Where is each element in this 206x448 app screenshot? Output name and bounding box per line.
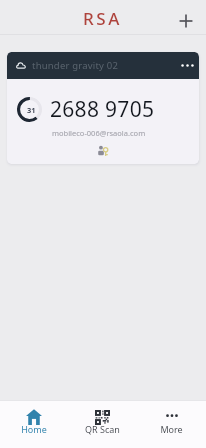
staticText: More [160,423,183,435]
staticText: thunder gravity 02 [32,59,119,72]
button[interactable]: More [137,401,206,448]
staticText: 31 [27,105,36,115]
button[interactable]: More options [178,57,196,75]
staticText: RSA [83,7,123,30]
staticText: mobileco-006@rsaola.com [52,128,146,138]
button[interactable]: thunder gravity 02 [7,52,199,164]
button[interactable]: Home [0,401,68,448]
staticText: QR Scan [85,423,120,435]
staticText: Home [21,423,47,435]
staticText: 2688 9705 [50,95,155,124]
button[interactable]: Add token [173,8,199,34]
button[interactable]: QR Scan [68,401,137,448]
